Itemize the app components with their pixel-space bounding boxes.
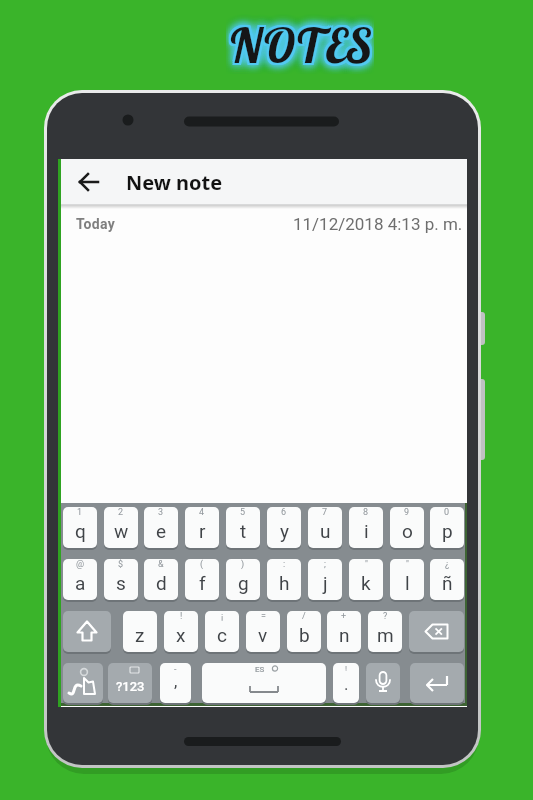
staticText: u [320, 520, 331, 542]
staticText: ¡ [221, 611, 224, 622]
staticText: 1 [77, 507, 83, 518]
button[interactable]: 0 [430, 507, 464, 548]
button[interactable]: . [333, 663, 359, 703]
staticText: = [261, 611, 266, 622]
button[interactable]: 4 [185, 507, 219, 548]
staticText: / [302, 611, 306, 622]
staticText: & [158, 559, 164, 570]
staticText: g [238, 572, 249, 594]
staticText: 5 [240, 507, 246, 518]
button[interactable]: ! [164, 611, 198, 652]
button[interactable]: @ [63, 559, 97, 600]
staticText: 9 [404, 507, 410, 518]
staticText: t [240, 520, 247, 542]
button[interactable]: ) [226, 559, 260, 600]
staticText: ES [255, 665, 265, 674]
staticText: . [344, 674, 349, 694]
staticText: 0 [444, 507, 450, 518]
staticText: d [156, 572, 167, 594]
staticText: NOTES [226, 16, 370, 72]
staticText: + [341, 611, 347, 622]
staticText: NOTES [226, 18, 370, 74]
staticText: 3 [158, 507, 164, 518]
staticText: Today [76, 216, 115, 232]
button[interactable]: & [144, 559, 178, 600]
button[interactable] [409, 611, 464, 652]
staticText: : [283, 559, 286, 570]
button[interactable] [63, 611, 111, 652]
button[interactable]: " [390, 559, 424, 600]
staticText: NOTES [228, 14, 372, 70]
staticText: 7 [322, 507, 328, 518]
staticText: h [279, 572, 290, 594]
button[interactable]: , [160, 663, 191, 703]
staticText: b [299, 624, 310, 646]
staticText: ! [345, 664, 348, 673]
staticText: 8 [363, 507, 369, 518]
button[interactable]: ( [185, 559, 219, 600]
staticText: @ [76, 559, 85, 570]
staticText: NOTES [230, 18, 374, 74]
staticText: p [442, 520, 453, 542]
staticText: y [280, 520, 289, 542]
staticText: , [174, 671, 178, 691]
button[interactable] [63, 663, 103, 703]
button[interactable]: 7 [308, 507, 342, 548]
staticText: " [365, 559, 368, 570]
button[interactable]: 1 [63, 507, 97, 548]
staticText: NOTES [230, 16, 374, 72]
button[interactable]: 2 [104, 507, 138, 548]
staticText: w [114, 520, 129, 542]
button[interactable]: : [267, 559, 301, 600]
staticText: i [364, 520, 369, 542]
staticText: m [377, 624, 394, 646]
staticText: 6 [281, 507, 287, 518]
staticText: ) [241, 559, 245, 570]
staticText: s [116, 572, 126, 594]
staticText: a [75, 572, 86, 594]
staticText: - [174, 664, 177, 675]
button[interactable]: ES [202, 663, 326, 703]
staticText: k [361, 572, 371, 594]
button[interactable]: 6 [267, 507, 301, 548]
button[interactable]: 9 [390, 507, 424, 548]
staticText: f [199, 572, 206, 594]
button[interactable]: 5 [226, 507, 260, 548]
staticText: ! [180, 611, 183, 622]
button[interactable]: z [123, 611, 157, 652]
button[interactable]: = [246, 611, 280, 652]
button[interactable]: 8 [349, 507, 383, 548]
button[interactable]: 3 [144, 507, 178, 548]
button[interactable]: ¿ [430, 559, 464, 600]
staticText: $ [118, 559, 124, 570]
staticText: ; [324, 559, 326, 570]
staticText: NOTES [226, 14, 370, 70]
button[interactable]: + [327, 611, 361, 652]
staticText: 11/12/2018 4:13 p. m. [293, 214, 463, 234]
staticText: 2 [118, 507, 124, 518]
staticText: n [339, 624, 350, 646]
staticText: r [199, 520, 206, 542]
staticText: q [75, 520, 86, 542]
staticText: l [405, 572, 410, 594]
button[interactable]: ; [308, 559, 342, 600]
button[interactable]: ?123 [108, 663, 152, 703]
staticText: c [217, 624, 227, 646]
button[interactable]: $ [104, 559, 138, 600]
staticText: ?123 [116, 679, 145, 694]
staticText: x [176, 624, 186, 646]
button[interactable] [410, 663, 464, 703]
staticText: j [323, 572, 328, 594]
staticText: " [406, 559, 409, 570]
button[interactable] [73, 166, 105, 198]
staticText: 4 [199, 507, 205, 518]
button[interactable]: ? [368, 611, 402, 652]
staticText: o [402, 520, 413, 542]
staticText: ( [200, 559, 204, 570]
staticText: ¿ [445, 559, 450, 570]
staticText: NOTES [228, 18, 372, 74]
button[interactable]: ¡ [205, 611, 239, 652]
button[interactable]: " [349, 559, 383, 600]
button[interactable]: / [287, 611, 321, 652]
button[interactable] [366, 663, 400, 703]
